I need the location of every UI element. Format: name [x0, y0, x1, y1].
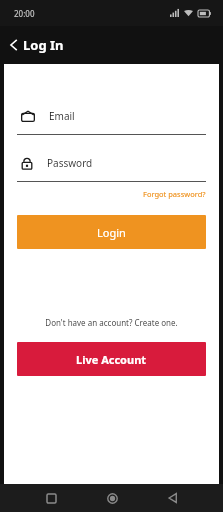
- button[interactable]: Recent apps: [40, 487, 62, 509]
- button[interactable]: Back: [161, 487, 183, 509]
- staticText: Login: [97, 225, 126, 240]
- button[interactable]: Don't have an account? Create one.: [17, 315, 206, 330]
- staticText: Password: [47, 156, 93, 170]
- button[interactable]: Login: [17, 215, 206, 249]
- button[interactable]: Back: [0, 30, 74, 60]
- other: Email: [21, 111, 35, 122]
- button[interactable]: Home: [101, 487, 123, 509]
- staticText: Live Account: [76, 352, 147, 367]
- button[interactable]: Live Account: [17, 342, 206, 376]
- button[interactable]: Email: [17, 104, 206, 135]
- staticText: Email: [49, 109, 75, 123]
- button[interactable]: Password: [17, 151, 206, 182]
- staticText: Log In: [23, 36, 64, 54]
- staticText: 20:00: [14, 8, 35, 19]
- other: Back: [10, 39, 18, 51]
- other: Password: [21, 157, 33, 170]
- button[interactable]: Forgot password?: [143, 187, 206, 201]
